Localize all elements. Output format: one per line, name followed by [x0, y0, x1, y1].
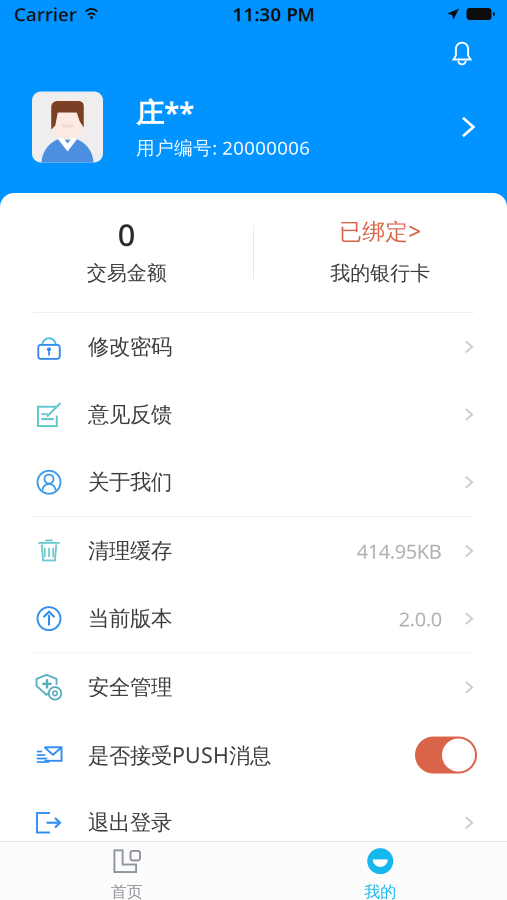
staticText: Carrier [14, 2, 77, 26]
staticText: 庄** [136, 94, 194, 131]
staticText: 关于我们 [88, 469, 172, 495]
button[interactable]: 修改密码 [0, 313, 507, 381]
staticText: 当前版本 [88, 605, 172, 632]
staticText: 11:30 PM [232, 2, 314, 26]
staticText: 意见反馈 [88, 401, 172, 428]
button[interactable]: 庄** [0, 76, 507, 178]
staticText: 修改密码 [88, 334, 172, 360]
staticText: 退出登录 [88, 810, 172, 836]
button[interactable]: 退出登录 [0, 789, 507, 857]
button[interactable]: 首页 [0, 842, 253, 900]
button[interactable]: 我的 [253, 842, 507, 900]
staticText: 已绑定> [339, 216, 421, 246]
button[interactable]: 当前版本 [0, 585, 507, 652]
staticText: 0 [118, 214, 136, 255]
button[interactable]: 关于我们 [0, 448, 507, 516]
staticText: 我的银行卡 [330, 261, 430, 286]
staticText: 清理缓存 [88, 538, 172, 564]
staticText: 是否接受PUSH消息 [88, 741, 271, 769]
staticText: 414.95KB [357, 538, 442, 564]
button[interactable]: 清理缓存 [0, 517, 507, 585]
button[interactable]: Notifications [439, 32, 485, 72]
button[interactable]: 意见反馈 [0, 381, 507, 448]
button[interactable]: 是否接受PUSH消息 [0, 721, 507, 789]
staticText: 安全管理 [88, 674, 172, 700]
staticText: 2.0.0 [399, 605, 442, 632]
button[interactable]: 安全管理 [0, 653, 507, 721]
staticText: 用户编号: 20000006 [136, 135, 310, 160]
staticText: 交易金额 [87, 261, 167, 285]
staticText: 首页 [111, 882, 143, 900]
staticText: 我的 [364, 882, 396, 900]
